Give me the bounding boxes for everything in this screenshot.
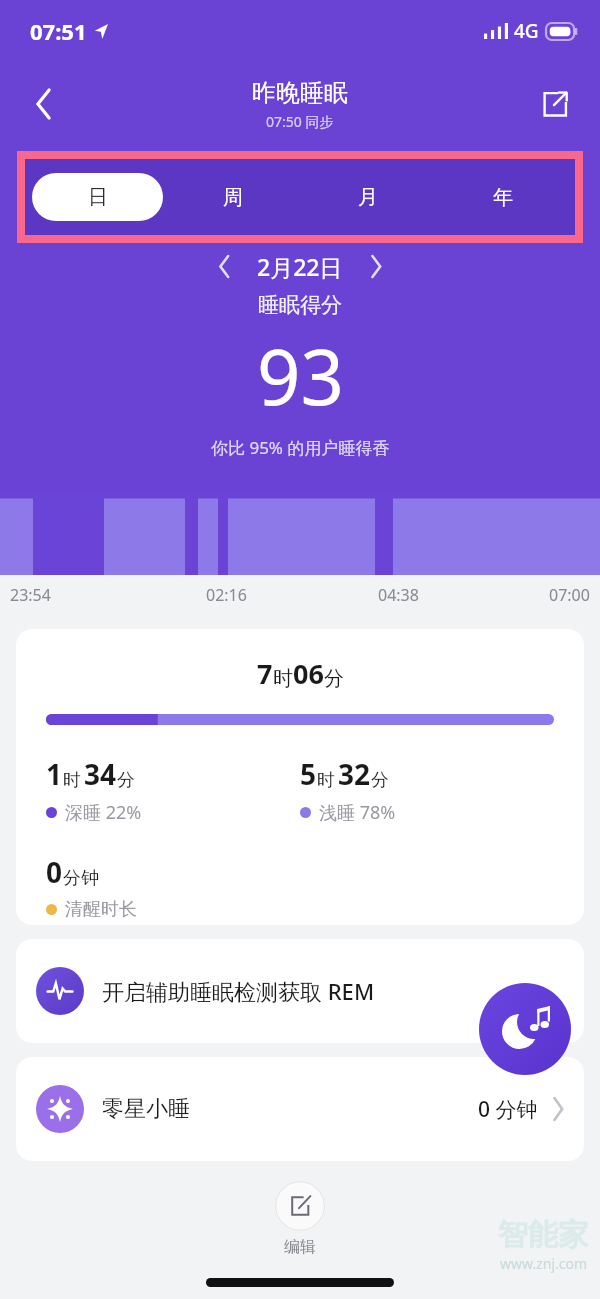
staticText: 07:51	[30, 16, 87, 46]
staticText: 07:50 同步	[266, 112, 334, 131]
staticText: 智能家	[498, 1216, 588, 1254]
staticText: 1	[46, 755, 63, 793]
staticText: 07:00	[549, 584, 590, 606]
staticText: 分	[117, 769, 135, 792]
staticText: 时	[317, 769, 335, 792]
staticText: 04:38	[378, 584, 419, 606]
staticText: 06	[293, 655, 324, 692]
button[interactable]: Sleep sounds	[479, 983, 571, 1075]
staticText: 深睡 22%	[65, 800, 142, 825]
button[interactable]: Back	[18, 78, 70, 130]
button[interactable]: 零星小睡	[16, 1057, 584, 1161]
button[interactable]: 7	[16, 629, 584, 925]
staticText: 分	[324, 666, 344, 691]
staticText: 5	[300, 755, 317, 793]
button[interactable]: Next day	[357, 247, 395, 285]
staticText: 0	[46, 853, 63, 891]
staticText: 02:16	[206, 584, 247, 606]
staticText: 昨晚睡眠	[252, 78, 348, 108]
button[interactable]: 年	[437, 173, 568, 221]
button[interactable]: 周	[167, 173, 298, 221]
staticText: 23:54	[10, 584, 51, 606]
staticText: 浅睡 78%	[319, 800, 396, 825]
staticText: 时	[273, 666, 293, 691]
staticText: 编辑	[284, 1237, 316, 1257]
staticText: 分	[371, 769, 389, 792]
button[interactable]: Previous day	[205, 247, 243, 285]
staticText: 零星小睡	[102, 1095, 190, 1123]
staticText: 年	[493, 185, 513, 210]
button[interactable]: Edit	[275, 1181, 325, 1257]
staticText: 清醒时长	[65, 898, 137, 921]
staticText: www.znj.com	[500, 1254, 588, 1273]
staticText: 睡眠得分	[258, 292, 342, 318]
staticText: 分钟	[63, 867, 99, 890]
staticText: 0 分钟	[478, 1095, 538, 1124]
staticText: 日	[88, 185, 108, 210]
staticText: 93	[257, 324, 344, 428]
staticText: 34	[84, 755, 117, 793]
button[interactable]: 开启辅助睡眠检测获取 REM	[16, 939, 584, 1043]
button[interactable]: 月	[302, 173, 433, 221]
staticText: 2月22日	[257, 251, 343, 282]
staticText: 周	[223, 185, 243, 210]
staticText: 32	[338, 755, 371, 793]
button[interactable]: 日	[32, 173, 163, 221]
staticText: 你比 95% 的用户睡得香	[211, 436, 390, 459]
staticText: 月	[358, 185, 378, 210]
staticText: 7	[257, 655, 273, 692]
staticText: 开启辅助睡眠检测获取 REM	[102, 976, 375, 1006]
staticText: 时	[63, 769, 81, 792]
staticText: 4G	[514, 18, 539, 44]
button[interactable]: Share	[530, 79, 580, 129]
